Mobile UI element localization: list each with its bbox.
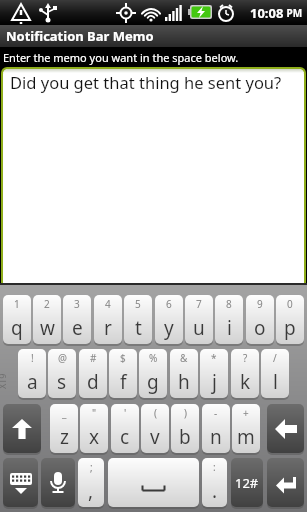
staticText: Did you get that thing he sent you? xyxy=(10,71,282,93)
button[interactable]: 5 xyxy=(124,295,152,344)
staticText: " xyxy=(92,406,97,420)
staticText: ; xyxy=(90,460,93,474)
button[interactable]: 3 xyxy=(63,295,91,344)
button[interactable]: Did you get that thing he sent you? xyxy=(3,69,304,283)
staticText: 1 xyxy=(14,297,20,311)
staticText: b xyxy=(179,424,191,450)
staticText: i xyxy=(227,315,232,341)
button[interactable] xyxy=(3,404,41,453)
button[interactable]: % xyxy=(139,349,167,398)
staticText: Enter the memo you want in the space bel… xyxy=(3,50,239,65)
button[interactable]: - xyxy=(202,404,230,453)
staticText: t xyxy=(135,315,142,341)
button[interactable] xyxy=(267,404,304,453)
button[interactable]: 0 xyxy=(276,295,304,344)
button[interactable]: 4 xyxy=(94,295,122,344)
staticText: o xyxy=(254,315,266,341)
staticText: 12# xyxy=(235,474,259,492)
button[interactable]: 7 xyxy=(185,295,213,344)
staticText: j xyxy=(212,369,217,395)
button[interactable]: @ xyxy=(48,349,76,398)
staticText: y xyxy=(164,315,174,341)
staticText: PM xyxy=(284,6,303,20)
staticText: Notification Bar Memo xyxy=(6,27,154,45)
staticText: u xyxy=(193,315,205,341)
button[interactable]: 12# xyxy=(231,458,263,507)
button[interactable] xyxy=(3,458,38,507)
staticText: 6 xyxy=(166,297,172,311)
button[interactable]: 2 xyxy=(33,295,61,344)
button[interactable]: ; xyxy=(78,458,104,507)
staticText: a xyxy=(27,369,38,395)
staticText: 2 xyxy=(44,297,50,311)
staticText: 4 xyxy=(105,297,111,311)
button[interactable]: ) xyxy=(171,404,199,453)
staticText: 7 xyxy=(196,297,202,311)
staticText: g xyxy=(147,369,159,395)
button[interactable] xyxy=(41,458,75,507)
button[interactable]: $ xyxy=(109,349,137,398)
button[interactable]: 6 xyxy=(155,295,183,344)
staticText: @ xyxy=(58,351,67,365)
staticText: ' xyxy=(124,406,127,420)
staticText: 10:08 xyxy=(250,4,284,22)
button[interactable]: ( xyxy=(141,404,169,453)
button[interactable]: & xyxy=(170,349,198,398)
staticText: 0 xyxy=(287,297,293,311)
staticText: * xyxy=(211,351,217,365)
button[interactable]: # xyxy=(79,349,107,398)
button[interactable]: " xyxy=(80,404,108,453)
button[interactable]: _ xyxy=(50,404,78,453)
staticText: n xyxy=(210,424,222,450)
staticText: % xyxy=(149,351,158,365)
staticText: c xyxy=(120,424,130,450)
staticText: d xyxy=(87,369,99,395)
staticText: s xyxy=(57,369,67,395)
staticText: e xyxy=(72,315,83,341)
staticText: z xyxy=(60,424,69,450)
staticText: . xyxy=(212,478,218,504)
button[interactable]: ! xyxy=(18,349,46,398)
button[interactable]: + xyxy=(232,404,260,453)
staticText: $ xyxy=(120,351,126,365)
staticText: ! xyxy=(31,351,34,365)
staticText: v xyxy=(150,424,160,450)
staticText: + xyxy=(243,406,249,420)
staticText: ( xyxy=(154,406,157,420)
staticText: 9 xyxy=(257,297,263,311)
staticText: x xyxy=(89,424,100,450)
staticText: q xyxy=(11,315,23,341)
staticText: p xyxy=(284,315,296,341)
staticText: , xyxy=(88,478,94,504)
button[interactable]: / xyxy=(261,349,289,398)
staticText: ) xyxy=(184,406,187,420)
staticText: 3 xyxy=(74,297,80,311)
staticText: / xyxy=(273,351,277,365)
button[interactable] xyxy=(108,458,199,507)
button[interactable]: * xyxy=(200,349,228,398)
staticText: _ xyxy=(62,406,67,420)
staticText: 5 xyxy=(135,297,141,311)
staticText: m xyxy=(237,424,255,450)
staticText: XT9 xyxy=(0,373,8,389)
staticText: & xyxy=(180,351,188,365)
button[interactable] xyxy=(267,458,304,507)
button[interactable]: 8 xyxy=(215,295,243,344)
staticText: k xyxy=(240,369,251,395)
staticText: f xyxy=(120,369,127,395)
staticText: w xyxy=(40,315,55,341)
button[interactable]: ? xyxy=(231,349,259,398)
staticText: ? xyxy=(243,351,248,365)
staticText: - xyxy=(214,406,218,420)
staticText: h xyxy=(178,369,190,395)
button[interactable]: 1 xyxy=(3,295,31,344)
staticText: r xyxy=(104,315,112,341)
button[interactable]: ' xyxy=(111,404,139,453)
button[interactable]: : xyxy=(202,458,227,507)
button[interactable]: 9 xyxy=(246,295,274,344)
staticText: # xyxy=(90,351,97,365)
staticText: : xyxy=(213,460,216,474)
staticText: l xyxy=(273,369,278,395)
staticText: 8 xyxy=(226,297,232,311)
